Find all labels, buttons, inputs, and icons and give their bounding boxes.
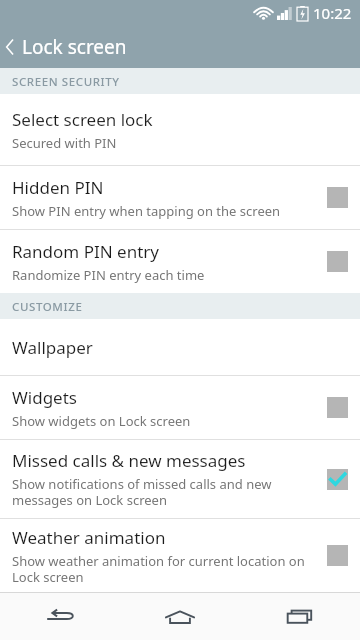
button[interactable]: Back — [0, 30, 360, 64]
staticText: Hidden PIN — [12, 176, 104, 199]
staticText: Secured with PIN — [12, 134, 117, 152]
button[interactable]: Select screen lock — [0, 94, 360, 165]
button[interactable]: Widgets — [0, 376, 360, 439]
button[interactable]: Wallpaper — [0, 319, 360, 375]
staticText: Show widgets on Lock screen — [12, 412, 191, 430]
button[interactable]: Random PIN entry — [0, 230, 360, 293]
staticText: 10:22 — [313, 3, 352, 23]
button[interactable]: Home — [120, 593, 240, 640]
staticText: Show notifications of missed calls and n… — [12, 475, 317, 509]
staticText: Wallpaper — [12, 336, 93, 359]
staticText: Weather animation — [12, 526, 166, 549]
staticText: CUSTOMIZE — [12, 299, 83, 315]
staticText: Select screen lock — [12, 108, 153, 131]
staticText: Random PIN entry — [12, 240, 159, 263]
staticText: Randomize PIN entry each time — [12, 266, 205, 284]
button[interactable]: Missed calls & new messages — [0, 440, 360, 518]
staticText: Widgets — [12, 386, 77, 409]
staticText: Missed calls & new messages — [12, 449, 246, 472]
button[interactable]: Recent apps — [240, 593, 360, 640]
staticText: SCREEN SECURITY — [12, 74, 120, 90]
staticText: Show PIN entry when tapping on the scree… — [12, 202, 281, 220]
staticText: Lock screen — [22, 34, 127, 60]
button[interactable]: Weather animation — [0, 519, 360, 592]
button[interactable]: Hidden PIN — [0, 166, 360, 229]
staticText: Show weather animation for current locat… — [12, 552, 317, 586]
button[interactable]: Back — [0, 593, 120, 640]
